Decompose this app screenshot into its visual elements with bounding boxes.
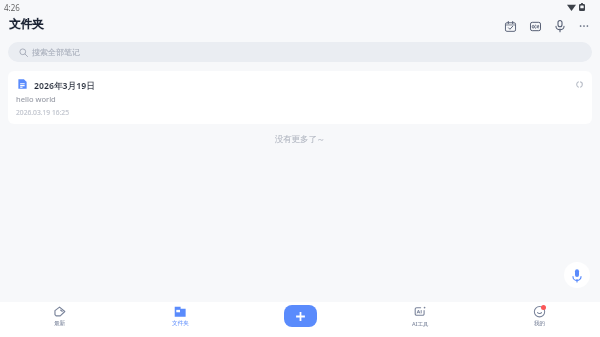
staticText: 4:26 <box>4 2 20 13</box>
staticText: 最新 <box>54 320 66 327</box>
button[interactable]: 2026年3月19日 <box>8 71 592 124</box>
button[interactable]: AI工具 <box>360 302 480 337</box>
button[interactable]: Create note <box>284 305 317 327</box>
button[interactable]: Scan text <box>523 14 547 38</box>
staticText: AI工具 <box>412 320 429 328</box>
staticText: 2026年3月19日 <box>34 80 95 92</box>
button[interactable]: 最新 <box>0 302 120 337</box>
button[interactable]: Voice input <box>564 262 590 288</box>
staticText: 我的 <box>534 320 546 327</box>
staticText: 搜索全部笔记 <box>32 47 80 57</box>
staticText: 没有更多了～ <box>0 134 600 145</box>
button[interactable]: 文件夹 <box>120 302 240 337</box>
staticText: 文件夹 <box>9 17 44 31</box>
button[interactable]: 我的 <box>480 302 600 337</box>
staticText: 文件夹 <box>172 320 189 327</box>
button[interactable]: Voice note <box>548 14 572 38</box>
staticText: 2026.03.19 16:25 <box>16 108 70 117</box>
button[interactable]: 搜索全部笔记 <box>8 42 592 62</box>
button[interactable]: Calendar <box>498 14 522 38</box>
staticText: hello world <box>16 94 56 104</box>
button[interactable]: More options <box>572 14 596 38</box>
